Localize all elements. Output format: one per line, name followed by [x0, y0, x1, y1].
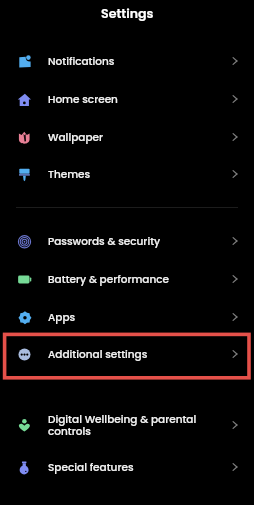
staticText: Battery & performance: [48, 272, 227, 287]
staticText: Passwords & security: [48, 234, 227, 249]
button[interactable]: Passwords & security: [0, 222, 254, 260]
button[interactable]: Special features: [0, 448, 254, 486]
staticText: Themes: [48, 167, 227, 182]
staticText: Home screen: [48, 92, 227, 107]
staticText: Wallpaper: [48, 130, 227, 145]
button[interactable]: Digital Wellbeing & parental controls: [0, 402, 254, 448]
button[interactable]: Notifications: [0, 42, 254, 80]
staticText: Digital Wellbeing & parental controls: [48, 412, 227, 439]
staticText: Apps: [48, 310, 227, 325]
button[interactable]: Wallpaper: [0, 118, 254, 156]
button[interactable]: Battery & performance: [0, 260, 254, 298]
button[interactable]: Home screen: [0, 80, 254, 118]
button[interactable]: Apps: [0, 298, 254, 336]
button[interactable]: Themes: [0, 155, 254, 193]
button[interactable]: Additional settings: [0, 335, 254, 373]
staticText: Notifications: [48, 54, 227, 69]
staticText: Special features: [48, 460, 227, 475]
staticText: Settings: [101, 5, 154, 23]
staticText: Additional settings: [48, 347, 227, 362]
